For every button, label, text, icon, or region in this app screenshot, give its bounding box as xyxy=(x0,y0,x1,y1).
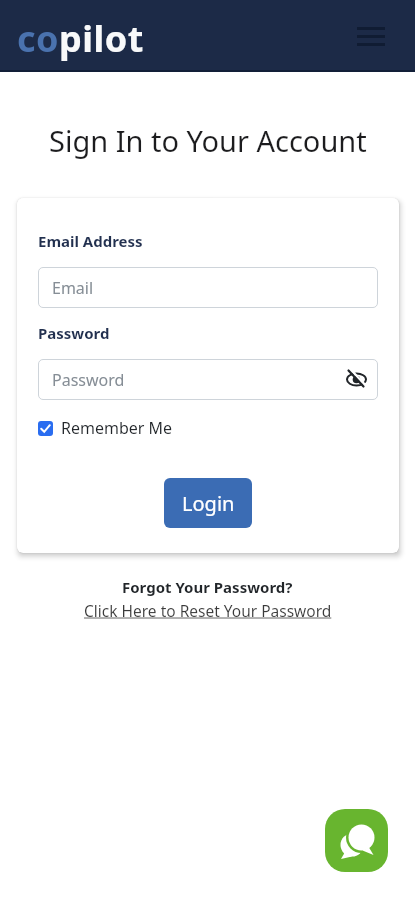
staticText: Sign In to Your Account xyxy=(49,121,367,160)
staticText: Login xyxy=(182,490,235,517)
staticText: Forgot Your Password? xyxy=(122,577,293,597)
staticText: Remember Me xyxy=(61,417,173,439)
staticText: Email xyxy=(52,277,94,299)
button[interactable]: Password xyxy=(38,359,378,400)
button[interactable]: Login xyxy=(164,478,252,528)
button[interactable] xyxy=(351,16,391,56)
staticText: copilot xyxy=(17,14,144,63)
button[interactable]: Remember Me xyxy=(38,417,173,439)
staticText: Password xyxy=(38,323,110,343)
button[interactable] xyxy=(325,809,388,872)
staticText: Password xyxy=(52,369,125,391)
button[interactable]: Email xyxy=(38,267,378,308)
button[interactable]: Click Here to Reset Your Password xyxy=(84,600,332,621)
staticText: Email Address xyxy=(38,231,143,251)
